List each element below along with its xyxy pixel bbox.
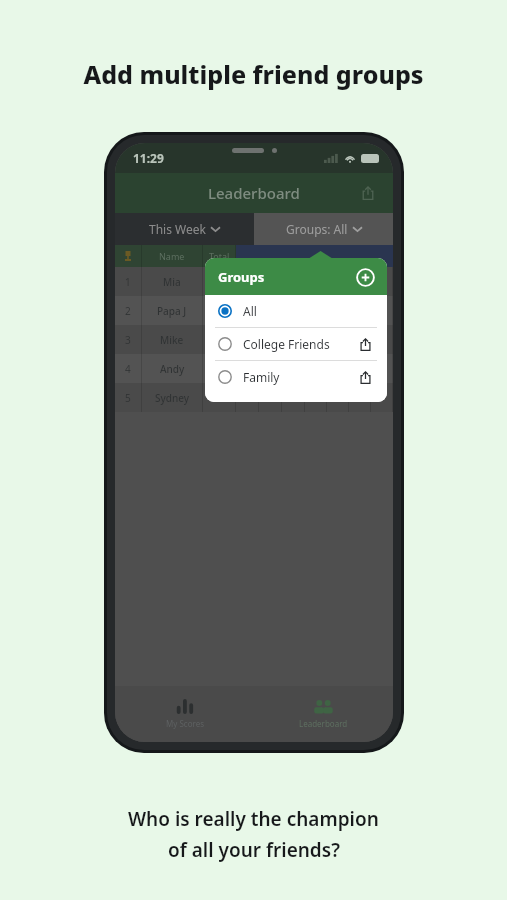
staticText: - xyxy=(358,333,362,347)
staticText: Papa J xyxy=(157,304,187,318)
staticText: 4 xyxy=(125,362,131,376)
button[interactable]: Share xyxy=(355,180,381,206)
button[interactable]: Family xyxy=(205,361,387,393)
staticText: - xyxy=(358,391,362,405)
button[interactable]: 3 xyxy=(115,325,393,354)
staticText: Mike xyxy=(160,333,184,347)
staticText: - xyxy=(336,391,340,405)
staticText: 1 xyxy=(125,275,131,289)
button[interactable]: 2 xyxy=(115,296,393,325)
staticText: 17 xyxy=(213,362,225,376)
button[interactable]: Share Family xyxy=(356,368,374,386)
button[interactable]: All xyxy=(205,295,387,327)
button[interactable]: 5 xyxy=(115,383,393,412)
staticText: Family xyxy=(243,369,356,385)
button[interactable]: This Week xyxy=(115,213,254,245)
staticText: Mia xyxy=(163,275,181,289)
staticText: Who is really the champion xyxy=(128,806,379,832)
staticText: All xyxy=(243,303,374,319)
staticText: 16 xyxy=(213,304,225,318)
staticText: Total xyxy=(209,250,230,262)
button[interactable]: 4 xyxy=(115,354,393,383)
button[interactable]: Leaderboard xyxy=(254,686,393,742)
staticText: 5 xyxy=(290,333,296,347)
button[interactable]: 1 xyxy=(115,267,393,296)
staticText: 4 xyxy=(244,362,250,376)
button[interactable]: Share College Friends xyxy=(356,335,374,353)
staticText: 4 xyxy=(244,391,250,405)
staticText: Name xyxy=(159,250,185,262)
staticText: Sydney xyxy=(155,391,190,405)
staticText: Leaderboard xyxy=(299,718,348,729)
button[interactable]: Add group xyxy=(354,266,376,288)
staticText: 4 xyxy=(313,391,319,405)
staticText: 17 xyxy=(213,333,225,347)
staticText: 5 xyxy=(125,391,131,405)
staticText: 5 xyxy=(290,391,296,405)
staticText: Groups: All xyxy=(286,221,348,237)
staticText: 4 xyxy=(313,333,319,347)
staticText: Add multiple friend groups xyxy=(0,57,507,91)
staticText: 3 xyxy=(125,333,131,347)
staticText: 4 xyxy=(244,333,250,347)
staticText: 4 xyxy=(244,304,250,318)
staticText: of all your friends? xyxy=(168,837,340,863)
button[interactable]: My Scores xyxy=(115,686,254,742)
staticText: Andy xyxy=(160,362,185,376)
button[interactable]: College Friends xyxy=(205,328,387,360)
staticText: 11:29 xyxy=(133,150,164,166)
staticText: 4 xyxy=(267,362,273,376)
staticText: 4 xyxy=(267,391,273,405)
staticText: Leaderboard xyxy=(208,183,300,203)
staticText: 16 xyxy=(213,275,225,289)
staticText: 4 xyxy=(267,333,273,347)
staticText: - xyxy=(358,275,362,289)
staticText: Groups xyxy=(218,268,265,286)
button[interactable]: Groups: All xyxy=(254,213,393,245)
staticText: This Week xyxy=(149,221,206,237)
staticText: - xyxy=(358,362,362,376)
staticText: 17 xyxy=(213,391,225,405)
staticText: My Scores xyxy=(166,718,204,729)
staticText: 4 xyxy=(244,275,250,289)
staticText: College Friends xyxy=(243,336,356,352)
staticText: - xyxy=(380,391,384,405)
staticText: 2 xyxy=(125,304,131,318)
